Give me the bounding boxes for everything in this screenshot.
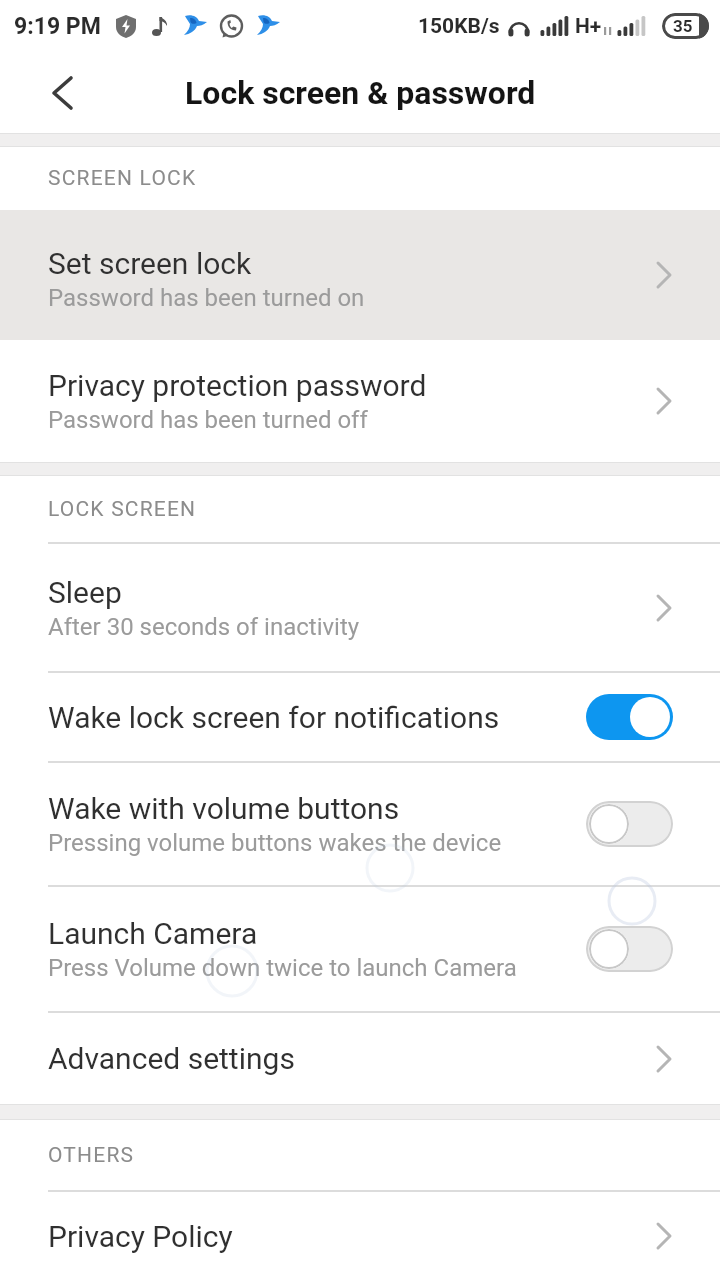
button[interactable]: Privacy Policy: [0, 1192, 720, 1280]
button[interactable]: [40, 71, 84, 115]
staticText: Advanced settings: [48, 1041, 295, 1076]
staticText: 150KB/s: [418, 14, 500, 39]
button[interactable]: Wake with volume buttons: [0, 763, 720, 885]
button[interactable]: Advanced settings: [0, 1013, 720, 1104]
button[interactable]: Launch Camera: [0, 887, 720, 1011]
staticText: OTHERS: [48, 1143, 135, 1168]
staticText: Password has been turned on: [48, 284, 365, 312]
staticText: Privacy Policy: [48, 1219, 233, 1254]
staticText: Set screen lock: [48, 246, 252, 281]
button[interactable]: Privacy protection password: [0, 340, 720, 462]
staticText: After 30 seconds of inactivity: [48, 613, 360, 641]
staticText: Password has been turned off: [48, 406, 368, 434]
staticText: LOCK SCREEN: [48, 497, 197, 522]
staticText: Lock screen & password: [185, 74, 536, 112]
staticText: Privacy protection password: [48, 368, 427, 403]
button[interactable]: [586, 801, 673, 847]
staticText: Launch Camera: [48, 916, 258, 951]
staticText: SCREEN LOCK: [48, 166, 197, 191]
staticText: H+: [575, 14, 602, 39]
staticText: Wake with volume buttons: [48, 791, 400, 826]
button[interactable]: Wake lock screen for notifications: [0, 673, 720, 761]
staticText: 35: [673, 16, 693, 36]
button[interactable]: [586, 694, 673, 740]
staticText: Sleep: [48, 575, 122, 610]
staticText: 9:19 PM: [14, 13, 101, 40]
button[interactable]: Set screen lock: [0, 210, 720, 340]
button[interactable]: Sleep: [0, 544, 720, 671]
button[interactable]: [586, 926, 673, 972]
staticText: Wake lock screen for notifications: [48, 700, 500, 735]
staticText: Pressing volume buttons wakes the device: [48, 829, 502, 857]
staticText: Press Volume down twice to launch Camera: [48, 954, 517, 982]
